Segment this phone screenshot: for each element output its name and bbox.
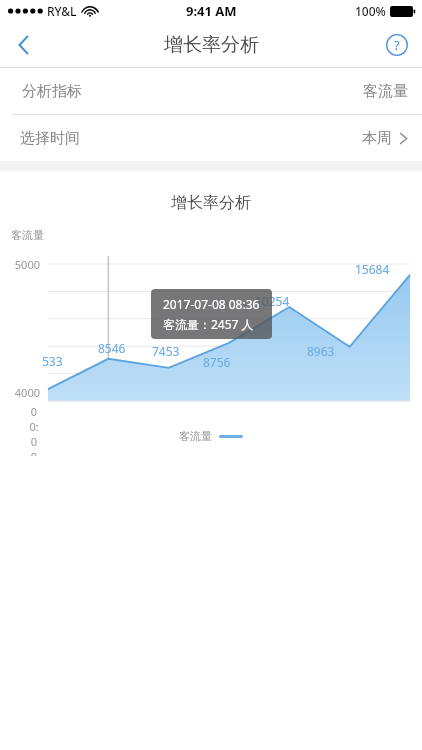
button[interactable]: Help — [372, 22, 422, 67]
staticText: 100% — [355, 3, 386, 19]
staticText: 7453 — [152, 343, 180, 359]
staticText: 增长率分析 — [171, 193, 251, 213]
staticText: 客流量 — [11, 228, 44, 242]
staticText: 4000 — [8, 385, 40, 400]
button[interactable]: 分析指标 — [0, 68, 422, 114]
staticText: 5000 — [8, 257, 40, 272]
staticText: 533 — [42, 353, 63, 369]
staticText: 15684 — [355, 261, 390, 277]
staticText: 00:00 — [28, 404, 40, 456]
staticText: 选择时间 — [20, 129, 80, 148]
staticText: 客流量 — [363, 82, 408, 101]
staticText: 客流量 — [179, 429, 212, 443]
staticText: 9:41 AM — [186, 2, 237, 20]
staticText: 客流量：2457 人 — [163, 316, 254, 332]
staticText: 分析指标 — [22, 82, 82, 101]
staticText: 8756 — [203, 354, 231, 370]
button[interactable]: 选择时间 — [0, 115, 422, 161]
staticText: RY&L — [47, 3, 77, 19]
staticText: 10254 — [255, 293, 290, 309]
staticText: 8546 — [98, 340, 126, 356]
staticText: 本周 — [362, 129, 392, 148]
staticText: ? — [394, 36, 400, 54]
button[interactable]: Back — [0, 22, 48, 67]
staticText: 8963 — [307, 343, 335, 359]
staticText: 增长率分析 — [164, 33, 259, 57]
staticText: 2017-07-08 08:36 — [163, 296, 260, 312]
